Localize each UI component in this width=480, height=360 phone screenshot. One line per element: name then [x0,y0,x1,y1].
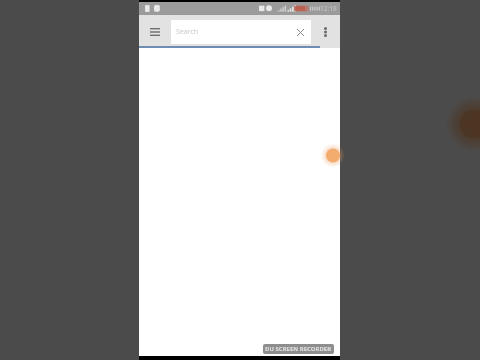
button[interactable]: Menu [139,15,171,48]
button[interactable]: More options [311,15,340,48]
staticText: DU SCREEN RECORDER [265,345,332,353]
button[interactable]: Search [171,20,311,44]
staticText: Search [176,27,199,37]
staticText: 12:18 [320,4,337,13]
button[interactable]: Add [318,140,340,172]
button[interactable]: Clear search [294,26,306,38]
